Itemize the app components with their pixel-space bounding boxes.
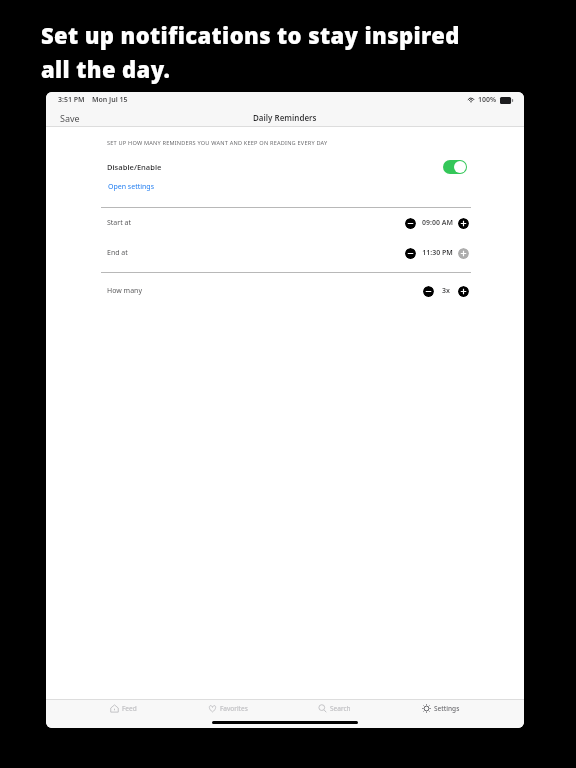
staticText: Settings: [434, 704, 460, 713]
staticText: 09:00 AM: [422, 218, 453, 228]
staticText: How many: [107, 286, 142, 296]
button[interactable]: Favorites: [202, 702, 254, 715]
button[interactable]: Enable reminders: [443, 160, 467, 174]
staticText: Daily Reminders: [253, 112, 317, 123]
staticText: Favorites: [220, 704, 248, 713]
staticText: Open settings: [108, 182, 155, 192]
staticText: Start at: [107, 218, 131, 228]
staticText: Save: [60, 112, 80, 124]
staticText: 3x: [442, 286, 450, 296]
staticText: Mon Jul 15: [92, 95, 128, 105]
staticText: 11:30 PM: [422, 248, 453, 258]
button[interactable]: Decrease End at: [405, 248, 416, 259]
staticText: Disable/Enable: [107, 162, 162, 172]
staticText: 100%: [478, 95, 497, 105]
staticText: Set up notifications to stay inspired: [41, 20, 460, 50]
button[interactable]: Search: [312, 702, 357, 715]
button[interactable]: Save: [54, 109, 86, 127]
staticText: End at: [107, 248, 128, 258]
staticText: all the day.: [41, 54, 171, 84]
button[interactable]: Settings: [416, 702, 466, 715]
staticText: Feed: [122, 704, 137, 713]
staticText: SET UP HOW MANY REMINDERS YOU WANT AND K…: [107, 139, 328, 147]
button[interactable]: Decrease Start at: [405, 218, 416, 229]
button[interactable]: Feed: [104, 702, 143, 715]
button[interactable]: Increase Start at: [458, 218, 469, 229]
button[interactable]: Open settings: [107, 180, 156, 194]
button[interactable]: Increase How many: [458, 286, 469, 297]
button[interactable]: Decrease How many: [423, 286, 434, 297]
staticText: 3:51 PM: [58, 95, 85, 105]
button[interactable]: Increase End at: [458, 248, 469, 259]
staticText: Search: [330, 704, 351, 713]
button[interactable]: Disable/Enable: [46, 156, 524, 178]
